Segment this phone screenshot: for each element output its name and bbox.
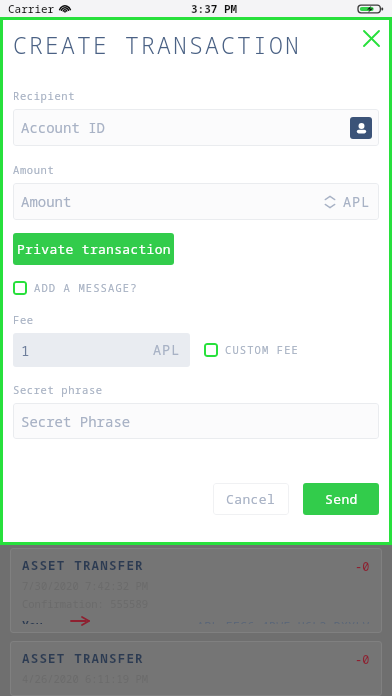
button[interactable]: Stepper [324,192,336,212]
staticText: CUSTOM FEE [225,343,299,357]
staticText: Send [325,490,358,508]
button[interactable]: Private transaction [13,233,174,265]
staticText: Private transaction [17,240,171,258]
button[interactable]: CUSTOM FEE [204,343,299,357]
staticText: -0 [355,651,370,667]
button[interactable]: Account ID [13,109,379,146]
staticText: ADD A MESSAGE? [34,281,138,295]
staticText: APL-FFG6-4RWF-U6L2-DXYLV [197,618,370,624]
staticText: Account ID [21,118,105,137]
staticText: APL [343,193,371,211]
button[interactable]: Close [358,25,384,51]
staticText: Secret phrase [13,383,103,397]
staticText: 3:37 PM [191,1,238,16]
button[interactable]: ASSET TRANSFER [10,641,382,696]
button[interactable]: Secret Phrase [13,403,379,439]
button[interactable]: ASSET TRANSFER [10,548,382,633]
button[interactable]: Cancel [213,483,289,515]
button[interactable]: Pick contact [350,117,372,139]
staticText: Cancel [226,490,276,508]
staticText: Carrier [8,1,55,16]
staticText: Amount [13,163,55,177]
button[interactable]: Amount [13,183,379,220]
staticText: Amount [21,192,72,211]
button[interactable]: 1 [13,333,190,367]
staticText: 1 [21,341,30,360]
staticText: CREATE TRANSACTION [13,29,302,60]
staticText: APL [153,341,181,359]
staticText: Recipient [13,89,76,103]
button[interactable]: ADD A MESSAGE? [13,279,138,297]
staticText: ASSET TRANSFER [22,557,144,574]
staticText: ASSET TRANSFER [22,650,144,667]
staticText: You [22,618,43,624]
staticText: Secret Phrase [21,412,131,431]
staticText: Fee [13,313,34,327]
staticText: -0 [355,558,370,574]
button[interactable]: Send [303,483,379,515]
